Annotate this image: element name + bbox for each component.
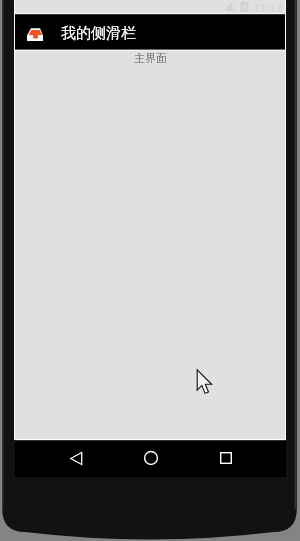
staticText: 11:17 xyxy=(253,0,283,14)
button[interactable]: Back xyxy=(54,440,98,476)
other: App icon xyxy=(27,28,43,41)
button[interactable]: Home xyxy=(129,440,173,476)
staticText: 主界面 xyxy=(134,51,167,65)
staticText: 我的侧滑栏 xyxy=(61,24,136,43)
button[interactable]: App icon xyxy=(15,14,286,50)
button[interactable]: Recent apps xyxy=(204,440,248,476)
